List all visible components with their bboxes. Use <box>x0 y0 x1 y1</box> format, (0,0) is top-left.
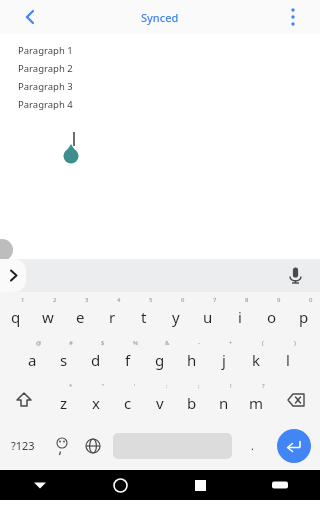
button[interactable]: * <box>48 378 80 421</box>
button[interactable]: # <box>48 335 80 378</box>
staticText: t <box>141 307 147 327</box>
staticText: ; <box>198 382 200 390</box>
staticText: 5 <box>149 296 153 304</box>
staticText: d <box>91 350 101 370</box>
staticText: - <box>198 339 200 347</box>
button[interactable]: Backspace <box>272 378 320 421</box>
staticText: h <box>187 350 197 370</box>
button[interactable]: % <box>112 335 144 378</box>
staticText: j <box>222 350 226 370</box>
staticText: ? <box>262 382 265 390</box>
staticText: n <box>219 393 229 413</box>
staticText: ( <box>262 339 264 347</box>
button[interactable]: Voice input <box>279 259 312 292</box>
staticText: u <box>203 307 213 327</box>
staticText: a <box>28 350 37 370</box>
staticText: k <box>252 350 261 370</box>
staticText: 3 <box>85 296 89 304</box>
staticText: Synced <box>141 10 179 25</box>
button[interactable]: More options <box>276 0 310 34</box>
button[interactable]: 1 <box>0 292 32 335</box>
button[interactable]: Enter <box>268 421 320 470</box>
staticText: 8 <box>245 296 249 304</box>
button[interactable]: ( <box>240 335 272 378</box>
button[interactable]: 3 <box>64 292 96 335</box>
staticText: p <box>299 307 309 327</box>
staticText: % <box>133 339 138 347</box>
staticText: 4 <box>117 296 121 304</box>
staticText: 9 <box>277 296 281 304</box>
staticText: w <box>42 307 54 327</box>
button[interactable]: + <box>208 335 240 378</box>
button[interactable]: Switch keyboard <box>240 470 320 500</box>
button[interactable]: Recent apps <box>160 470 240 500</box>
staticText: 6 <box>181 296 185 304</box>
button[interactable]: ! <box>208 378 240 421</box>
button[interactable]: 5 <box>128 292 160 335</box>
button[interactable]: ?123 <box>0 421 46 470</box>
staticText: e <box>76 307 85 327</box>
staticText: # <box>69 339 73 347</box>
staticText: ) <box>294 339 296 347</box>
staticText: o <box>267 307 277 327</box>
staticText: g <box>155 350 165 370</box>
button[interactable]: . <box>237 421 268 470</box>
button[interactable]: ? <box>240 378 272 421</box>
staticText: z <box>60 393 68 413</box>
button[interactable]: 0 <box>288 292 320 335</box>
button[interactable]: ; <box>176 378 208 421</box>
staticText: + <box>229 339 233 347</box>
button[interactable]: 4 <box>96 292 128 335</box>
staticText: & <box>165 339 170 347</box>
button[interactable]: 9 <box>256 292 288 335</box>
button[interactable]: 8 <box>224 292 256 335</box>
button[interactable]: " <box>80 378 112 421</box>
staticText: 1 <box>21 296 25 304</box>
button[interactable]: ) <box>272 335 304 378</box>
staticText: . <box>251 438 254 453</box>
button[interactable]: $ <box>80 335 112 378</box>
staticText: Paragraph 2 <box>18 62 73 75</box>
staticText: y <box>172 307 180 327</box>
button[interactable]: Home <box>80 470 160 500</box>
staticText: * <box>69 382 73 390</box>
button[interactable]: 7 <box>192 292 224 335</box>
button[interactable]: 6 <box>160 292 192 335</box>
staticText: c <box>124 393 132 413</box>
staticText: q <box>11 307 21 327</box>
staticText: x <box>92 393 100 413</box>
button[interactable] <box>108 421 237 470</box>
staticText: f <box>125 350 131 370</box>
button[interactable]: Change language <box>77 421 108 470</box>
staticText: r <box>109 307 116 327</box>
button[interactable]: : <box>144 378 176 421</box>
button[interactable]: @ <box>16 335 48 378</box>
staticText: Paragraph 4 <box>18 98 73 111</box>
button[interactable]: - <box>176 335 208 378</box>
staticText: s <box>60 350 68 370</box>
staticText: v <box>156 393 164 413</box>
staticText: $ <box>101 339 105 347</box>
staticText: Paragraph 1 <box>18 44 73 57</box>
staticText: b <box>187 393 197 413</box>
button[interactable]: Hide keyboard <box>0 470 80 500</box>
staticText: ?123 <box>11 438 35 453</box>
button[interactable]: & <box>144 335 176 378</box>
staticText: i <box>238 307 242 327</box>
button[interactable]: Emoji <box>46 421 77 470</box>
button[interactable]: ' <box>112 378 144 421</box>
staticText: ! <box>230 382 232 390</box>
staticText: 7 <box>213 296 217 304</box>
staticText: " <box>102 382 105 390</box>
staticText: @ <box>36 339 42 347</box>
staticText: m <box>249 393 264 413</box>
button[interactable]: 2 <box>32 292 64 335</box>
staticText: ' <box>134 382 136 390</box>
button[interactable]: Expand toolbar <box>0 259 26 292</box>
staticText: Paragraph 3 <box>18 80 73 93</box>
button[interactable]: Shift <box>0 378 48 421</box>
staticText: 2 <box>53 296 57 304</box>
button[interactable]: Back <box>13 0 47 34</box>
staticText: 0 <box>309 296 313 304</box>
staticText: : <box>166 382 168 390</box>
